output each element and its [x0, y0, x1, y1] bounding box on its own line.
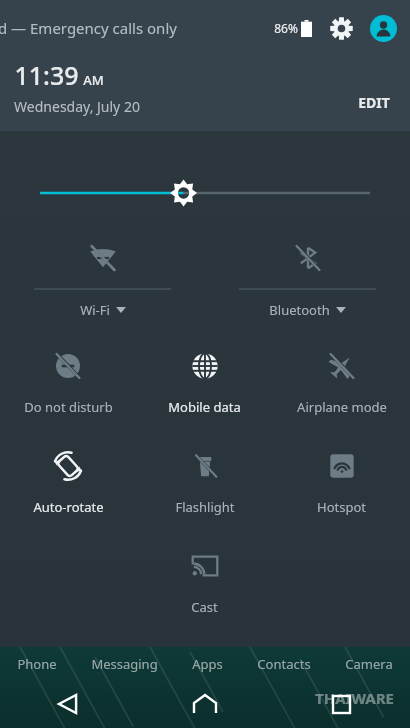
button[interactable]: Hotspot — [273, 435, 410, 535]
button[interactable]: Mobile data — [136, 335, 273, 435]
button[interactable]: Cast — [136, 535, 273, 635]
staticText: Wednesday, July 20 — [14, 97, 140, 116]
button[interactable]: EDIT — [352, 89, 396, 116]
staticText: 11:39 — [14, 58, 79, 92]
button[interactable]: Camera — [345, 655, 393, 673]
staticText: AM — [83, 71, 104, 89]
button[interactable]: Messaging — [91, 655, 158, 673]
button[interactable]: Do not disturb — [0, 335, 136, 435]
staticText: Hotspot — [317, 498, 366, 516]
staticText: Camera — [345, 655, 393, 673]
button[interactable]: Settings — [326, 13, 356, 43]
button[interactable]: Flashlight — [136, 435, 273, 535]
staticText: Do not disturb — [24, 398, 113, 416]
staticText: Flashlight — [175, 498, 235, 516]
staticText: Wi-Fi — [80, 301, 110, 319]
staticText: 86% — [274, 20, 298, 36]
button[interactable]: Airplane mode — [273, 335, 410, 435]
button[interactable]: Home — [136, 680, 273, 728]
button[interactable]: Recent apps — [273, 680, 410, 728]
staticText: EDIT — [358, 93, 390, 112]
staticText: Airplane mode — [297, 398, 387, 416]
staticText: Contacts — [257, 655, 311, 673]
button[interactable]: Auto-rotate — [0, 435, 136, 535]
staticText: rd — Emergency calls only — [0, 18, 177, 38]
button[interactable]: Contacts — [257, 655, 311, 673]
staticText: Messaging — [91, 655, 158, 673]
staticText: Cast — [191, 598, 218, 616]
staticText: Auto-rotate — [33, 498, 104, 516]
button[interactable]: Brightness — [0, 171, 410, 215]
button[interactable]: Phone — [17, 655, 57, 673]
button[interactable]: Wi-Fi — [0, 243, 205, 319]
staticText: Mobile data — [168, 398, 241, 416]
staticText: Phone — [17, 655, 57, 673]
staticText: Bluetooth — [269, 301, 330, 319]
button[interactable]: Bluetooth — [205, 243, 410, 319]
button[interactable]: User profile — [368, 13, 398, 43]
button[interactable]: Back — [0, 680, 136, 728]
button[interactable]: Apps — [192, 655, 223, 673]
staticText: THAIWARE — [315, 688, 394, 708]
staticText: Apps — [192, 655, 223, 673]
